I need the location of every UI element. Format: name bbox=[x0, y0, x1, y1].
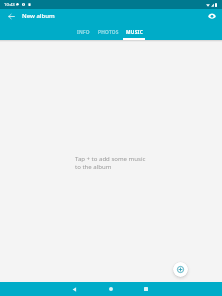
button[interactable]: Back bbox=[4, 9, 18, 23]
button[interactable]: Add music bbox=[173, 262, 188, 277]
button[interactable]: MUSIC bbox=[121, 24, 147, 40]
staticText: Tap + to add some music to the album bbox=[75, 155, 146, 171]
button[interactable]: Preview bbox=[205, 9, 219, 23]
button[interactable]: PHOTOS bbox=[96, 24, 121, 40]
staticText: INFO bbox=[77, 29, 90, 36]
staticText: 10:43 bbox=[4, 2, 15, 8]
staticText: New album bbox=[22, 12, 55, 20]
staticText: PHOTOS bbox=[98, 29, 119, 36]
button[interactable]: INFO bbox=[71, 24, 96, 40]
staticText: MUSIC bbox=[126, 29, 143, 36]
button[interactable]: Home bbox=[103, 282, 119, 296]
button[interactable]: Recents bbox=[138, 282, 154, 296]
button[interactable]: Back bbox=[66, 282, 82, 296]
